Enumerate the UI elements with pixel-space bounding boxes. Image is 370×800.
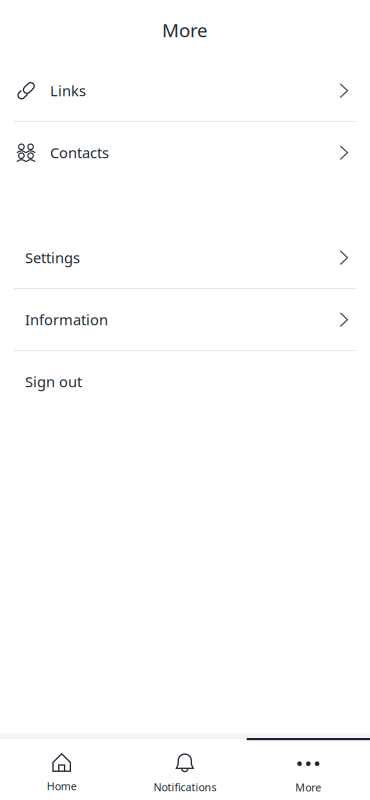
button[interactable]: Notifications <box>123 738 247 800</box>
button[interactable]: Settings <box>0 227 370 288</box>
staticText: Links <box>50 81 86 100</box>
button[interactable]: Links <box>0 60 370 121</box>
button[interactable]: Sign out <box>0 351 370 412</box>
staticText: Information <box>25 310 108 329</box>
button[interactable]: Information <box>0 289 370 350</box>
staticText: Home <box>47 779 77 793</box>
button[interactable]: More <box>247 738 370 800</box>
button[interactable]: Contacts <box>0 122 370 183</box>
staticText: Sign out <box>25 372 82 391</box>
staticText: More <box>162 18 208 42</box>
staticText: Settings <box>25 248 80 267</box>
staticText: Notifications <box>153 780 216 794</box>
staticText: Contacts <box>50 143 109 162</box>
staticText: More <box>295 780 321 794</box>
button[interactable]: Home <box>0 738 123 800</box>
